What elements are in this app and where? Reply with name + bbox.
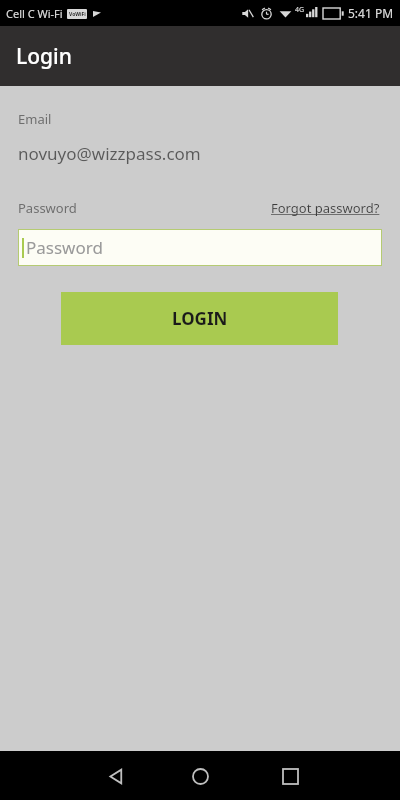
staticText: 5:41 PM xyxy=(348,5,394,21)
button[interactable]: Home xyxy=(180,756,220,796)
staticText: Cell C Wi-Fi xyxy=(6,6,63,21)
button[interactable]: Recent apps xyxy=(270,756,310,796)
staticText: Login xyxy=(16,42,72,71)
button[interactable]: Back xyxy=(96,756,136,796)
staticText: Email xyxy=(18,110,52,128)
staticText: novuyo@wizzpass.com xyxy=(18,142,201,165)
staticText: VoWiFi xyxy=(69,11,86,18)
staticText: LOGIN xyxy=(172,307,228,330)
staticText: Password xyxy=(26,236,103,259)
button[interactable]: Password xyxy=(18,229,382,266)
staticText: 4G xyxy=(295,5,305,15)
staticText: Password xyxy=(18,199,77,217)
staticText: Forgot password? xyxy=(271,199,380,217)
button[interactable]: LOGIN xyxy=(61,292,338,345)
button[interactable]: Forgot password? xyxy=(269,197,382,219)
